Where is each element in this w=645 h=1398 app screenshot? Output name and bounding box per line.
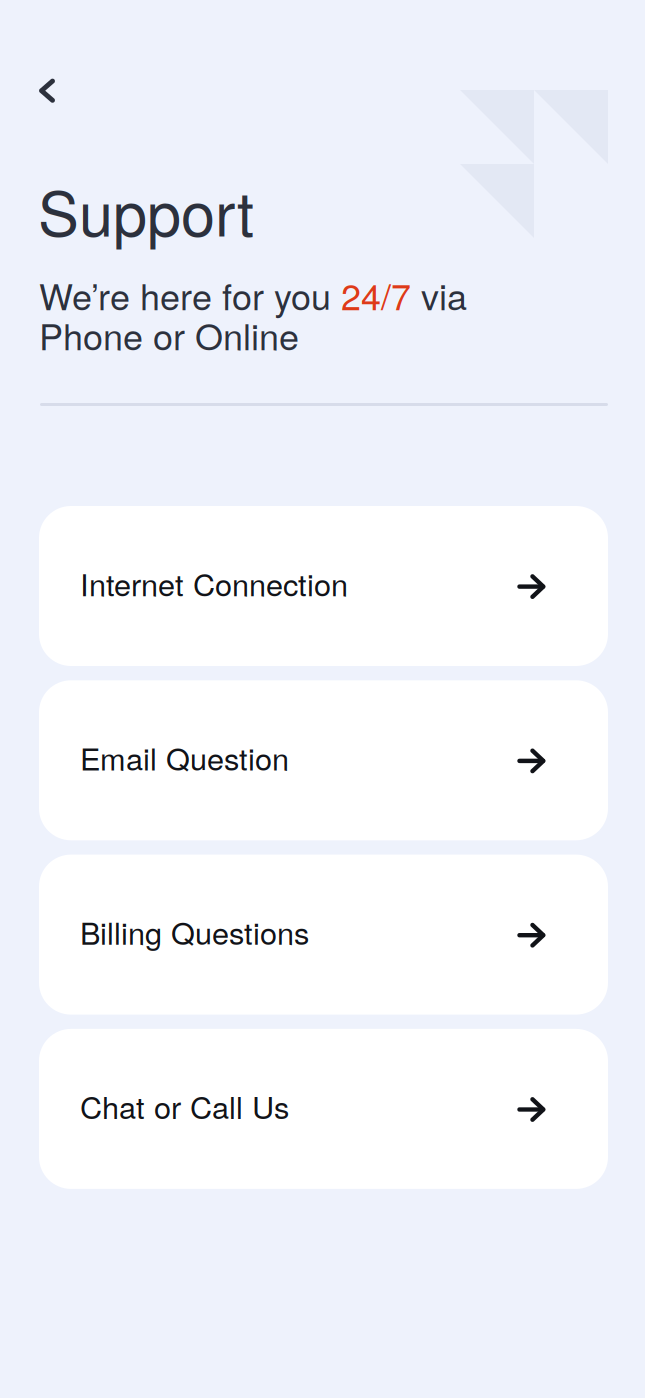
button[interactable]: Chat or Call Us <box>39 1029 608 1189</box>
button[interactable]: Email Question <box>39 680 608 840</box>
staticText: Phone or Online <box>39 309 299 361</box>
staticText: Chat or Call Us <box>80 1084 289 1128</box>
staticText: via <box>411 269 467 321</box>
staticText: Billing Questions <box>80 910 309 953</box>
button[interactable]: Billing Questions <box>39 855 608 1015</box>
staticText: We’re here for you <box>39 269 341 321</box>
staticText: Internet Connection <box>80 561 348 605</box>
staticText: Email Question <box>80 735 289 779</box>
button[interactable]: Back <box>25 62 81 118</box>
button[interactable]: Internet Connection <box>39 506 608 666</box>
staticText: 24/7 <box>341 269 411 321</box>
staticText: Support <box>38 166 254 254</box>
